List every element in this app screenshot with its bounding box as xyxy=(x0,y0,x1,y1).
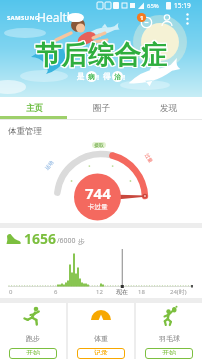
staticText: 运动 xyxy=(44,159,54,171)
button[interactable]: 圈子 xyxy=(68,97,135,119)
button[interactable]: 羽毛球 xyxy=(136,303,202,359)
staticText: 体重 xyxy=(94,334,108,343)
staticText: 主页 xyxy=(26,103,43,114)
staticText: 节后综合症 xyxy=(36,39,169,72)
staticText: Health xyxy=(37,9,75,25)
staticText: 12 xyxy=(96,288,103,296)
staticText: 节后综合症 xyxy=(34,40,167,73)
staticText: 65% xyxy=(147,2,159,10)
staticText: SAMSUNG xyxy=(7,14,40,22)
staticText: 体重管理 xyxy=(8,126,42,137)
staticText: 节后综合症 xyxy=(36,40,169,73)
staticText: 6 xyxy=(54,288,58,296)
staticText: 跑步 xyxy=(26,334,40,343)
staticText: 节后综合症 xyxy=(36,38,169,71)
button[interactable]: 体重 xyxy=(68,303,134,359)
staticText: 744 xyxy=(85,183,111,203)
staticText: 圈子 xyxy=(93,103,110,114)
staticText: 羽毛球 xyxy=(159,334,180,343)
staticText: 卡过量 xyxy=(88,203,108,211)
button[interactable]: 开始 xyxy=(9,348,57,359)
button[interactable]: 主页 xyxy=(0,97,68,119)
staticText: 0 xyxy=(9,288,13,296)
staticText: 治 xyxy=(114,73,121,81)
staticText: 18 xyxy=(138,288,145,296)
button[interactable]: 1656 xyxy=(0,228,202,298)
staticText: ! xyxy=(97,72,100,82)
staticText: 开始 xyxy=(162,348,176,355)
staticText: 过量 xyxy=(144,152,154,164)
staticText: 病 xyxy=(88,73,95,81)
button[interactable]: 开始 xyxy=(145,348,193,359)
staticText: 1 xyxy=(140,14,144,22)
staticText: 开始 xyxy=(26,348,40,355)
staticText: 节后综合症 xyxy=(35,38,168,71)
staticText: 节后综合症 xyxy=(34,39,167,72)
staticText: 15:19 xyxy=(174,1,191,10)
staticText: 节后综合症 xyxy=(35,39,168,72)
button[interactable]: 体重管理 xyxy=(0,120,202,223)
staticText: 现在 xyxy=(116,288,128,296)
staticText: 24(时) xyxy=(170,288,187,296)
staticText: /6000 xyxy=(57,236,76,246)
staticText: 节后综合症 xyxy=(35,40,168,73)
staticText: 得 xyxy=(103,72,111,81)
staticText: 发现 xyxy=(160,103,177,114)
button[interactable]: 发现 xyxy=(135,97,202,119)
staticText: 记录 xyxy=(94,348,108,355)
staticText: 步 xyxy=(78,237,85,246)
button[interactable]: 记录 xyxy=(77,348,125,359)
staticText: 节后综合症 xyxy=(34,38,167,71)
staticText: 是 xyxy=(77,72,85,81)
staticText: 1656 xyxy=(24,229,57,248)
staticText: 摄取 xyxy=(94,142,104,148)
staticText: ! xyxy=(123,72,126,82)
button[interactable]: 跑步 xyxy=(0,303,66,359)
